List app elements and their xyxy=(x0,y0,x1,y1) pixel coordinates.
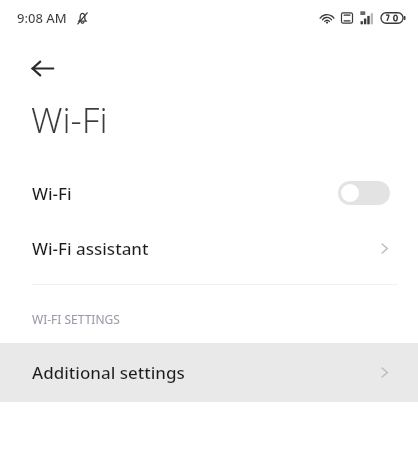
button[interactable]: Additional settings xyxy=(0,343,418,402)
button[interactable]: Wi-Fi assistant xyxy=(0,220,418,276)
staticText: Wi-Fi xyxy=(32,182,72,205)
button[interactable]: Wi-Fi xyxy=(0,166,418,220)
staticText: Additional settings xyxy=(32,361,185,384)
staticText: Wi-Fi xyxy=(31,96,108,144)
button[interactable]: Back xyxy=(18,44,66,92)
staticText: WI-FI SETTINGS xyxy=(32,311,120,327)
staticText: Wi-Fi assistant xyxy=(32,237,149,260)
staticText: 9:08 AM xyxy=(17,9,67,27)
